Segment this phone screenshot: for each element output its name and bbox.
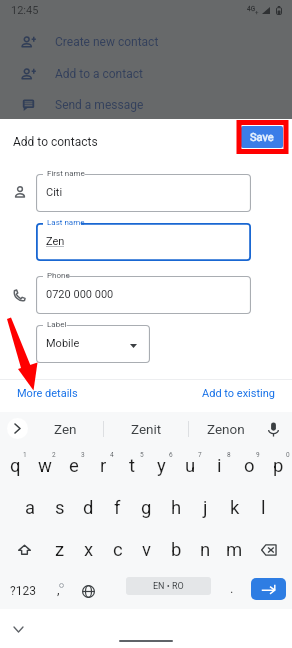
button[interactable]: h	[161, 491, 190, 525]
staticText: 2	[52, 451, 56, 459]
button[interactable]: q	[0, 450, 29, 486]
button[interactable]: Save	[241, 126, 283, 148]
button[interactable]: Change language	[74, 574, 102, 608]
staticText: y	[157, 455, 166, 477]
staticText: z	[55, 539, 65, 561]
button[interactable]: x	[73, 533, 102, 567]
button[interactable]: u	[175, 450, 204, 486]
button[interactable]: More suggestions	[7, 418, 28, 439]
staticText: 6	[169, 451, 173, 459]
button[interactable]: Backspace	[251, 533, 287, 567]
button[interactable]: i	[204, 450, 233, 486]
button[interactable]: Zen	[30, 412, 100, 447]
button[interactable]: Add to a contact	[0, 58, 292, 89]
staticText: Zenon	[207, 421, 245, 437]
button[interactable]: r	[88, 450, 117, 486]
button[interactable]: f	[102, 491, 131, 525]
staticText: Mobile	[46, 337, 80, 350]
button[interactable]: .	[219, 574, 245, 608]
button[interactable]: c	[102, 533, 131, 567]
staticText: More details	[17, 387, 78, 400]
staticText: r	[100, 455, 107, 477]
staticText: Add to existing	[202, 387, 275, 400]
staticText: Zen	[54, 421, 77, 437]
button[interactable]: EN • RO	[126, 577, 211, 595]
staticText: 3	[81, 451, 85, 459]
staticText: Add to contacts	[13, 135, 98, 149]
button[interactable]: p	[263, 450, 292, 486]
staticText: ,	[57, 582, 60, 597]
button[interactable]: s	[44, 491, 73, 525]
staticText: 0720 000 000	[46, 288, 114, 301]
button[interactable]: o	[234, 450, 263, 486]
staticText: i	[217, 455, 222, 477]
staticText: m	[226, 539, 243, 561]
staticText: EN • RO	[153, 581, 184, 592]
button[interactable]: j	[190, 491, 219, 525]
button[interactable]: e	[58, 450, 87, 486]
staticText: e	[69, 455, 79, 477]
staticText: n	[200, 539, 211, 561]
button[interactable]: w	[29, 450, 58, 486]
staticText: s	[55, 497, 65, 519]
staticText: Last name	[47, 218, 85, 227]
staticText: 1	[23, 451, 27, 459]
button[interactable]: t	[117, 450, 146, 486]
staticText: b	[171, 539, 182, 561]
button[interactable]: Send a message	[0, 89, 292, 120]
staticText: l	[261, 497, 266, 519]
button[interactable]: k	[219, 491, 248, 525]
staticText: 5	[140, 451, 144, 459]
button[interactable]: More details	[17, 387, 78, 400]
staticText: Create new contact	[55, 35, 159, 49]
button[interactable]: First name	[36, 174, 251, 212]
button[interactable]: g	[131, 491, 160, 525]
button[interactable]: v	[131, 533, 160, 567]
staticText: ?123	[10, 584, 36, 598]
staticText: 4G	[247, 5, 256, 13]
button[interactable]: Zenon	[191, 412, 261, 447]
button[interactable]: n	[190, 533, 219, 567]
button[interactable]: Phone	[36, 276, 251, 314]
staticText: x	[84, 539, 94, 561]
staticText: g	[141, 497, 152, 519]
button[interactable]: ,	[45, 574, 73, 608]
staticText: c	[113, 539, 123, 561]
button[interactable]: Next	[251, 578, 286, 600]
staticText: 12:45	[11, 4, 39, 17]
button[interactable]: Shift	[6, 533, 42, 567]
button[interactable]: b	[161, 533, 190, 567]
staticText: 7	[198, 451, 202, 459]
button[interactable]: z	[44, 533, 73, 567]
button[interactable]: ?123	[3, 574, 43, 608]
staticText: Save	[250, 131, 274, 144]
staticText: v	[142, 539, 151, 561]
staticText: 8	[227, 451, 231, 459]
staticText: j	[203, 497, 208, 519]
staticText: Phone	[47, 271, 70, 280]
staticText: d	[83, 497, 94, 519]
staticText: w	[38, 455, 52, 477]
button[interactable]: a	[15, 491, 44, 525]
staticText: 9	[256, 451, 260, 459]
button[interactable]: Label	[36, 325, 150, 363]
button[interactable]: m	[219, 533, 248, 567]
button[interactable]: y	[146, 450, 175, 486]
button[interactable]: Zenit	[111, 412, 181, 447]
staticText: f	[114, 497, 121, 519]
button[interactable]: d	[73, 491, 102, 525]
staticText: q	[10, 455, 21, 477]
button[interactable]: Hide keyboard	[10, 621, 26, 637]
button[interactable]: Create new contact	[0, 26, 292, 57]
button[interactable]: Add to existing	[202, 387, 275, 400]
button[interactable]: l	[248, 491, 277, 525]
button[interactable]: Last name	[36, 223, 251, 261]
button[interactable]: Voice input	[261, 412, 285, 446]
staticText: h	[171, 497, 182, 519]
staticText: a	[25, 497, 36, 519]
staticText: Zen	[46, 235, 65, 248]
staticText: t	[129, 455, 136, 477]
staticText: p	[273, 455, 284, 477]
staticText: Citi	[46, 186, 63, 199]
staticText: u	[185, 455, 196, 477]
